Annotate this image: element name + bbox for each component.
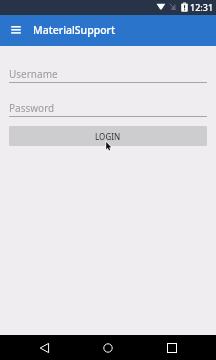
staticText: Password: [9, 101, 55, 115]
button[interactable]: Recent apps: [159, 335, 185, 360]
button[interactable]: Password: [9, 101, 207, 117]
staticText: Username: [9, 67, 58, 81]
button[interactable]: Username: [9, 67, 207, 83]
button[interactable]: Home: [95, 335, 121, 360]
button[interactable]: Back: [32, 335, 58, 360]
staticText: MaterialSupport: [33, 23, 116, 37]
button[interactable]: LOGIN: [9, 126, 207, 146]
staticText: 12:31: [190, 1, 214, 13]
staticText: LOGIN: [95, 131, 121, 142]
button[interactable]: Open navigation menu: [4, 19, 28, 43]
